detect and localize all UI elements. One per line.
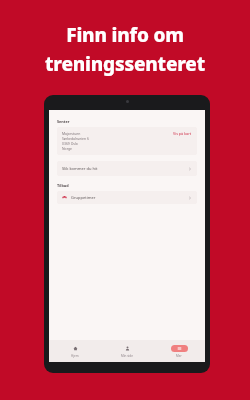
staticText: 0369 Oslo bbox=[62, 141, 78, 146]
staticText: Majorstuen bbox=[62, 131, 81, 136]
staticText: Senter bbox=[57, 119, 70, 124]
staticText: Hjem bbox=[71, 354, 79, 358]
staticText: Sørkedalsveien 6 bbox=[62, 136, 89, 141]
staticText: Gruppetimer bbox=[71, 195, 96, 200]
button[interactable]: Mer bbox=[153, 340, 205, 362]
staticText: Min side bbox=[121, 354, 133, 358]
staticText: treningssenteret bbox=[45, 51, 205, 77]
button[interactable]: Hjem bbox=[49, 340, 101, 362]
staticText: Slik kommer du hit bbox=[62, 166, 98, 171]
staticText: Norge bbox=[62, 146, 72, 151]
button[interactable]: Min side bbox=[101, 340, 153, 362]
button[interactable]: Slik kommer du hit bbox=[57, 161, 197, 176]
staticText: Finn info om bbox=[66, 22, 184, 48]
button[interactable]: Majorstuen bbox=[57, 127, 197, 155]
staticText: Mer bbox=[176, 354, 182, 358]
button[interactable]: Gruppetimer bbox=[57, 191, 197, 204]
staticText: Tilbud bbox=[57, 183, 69, 188]
staticText: Vis på kart bbox=[173, 131, 192, 136]
